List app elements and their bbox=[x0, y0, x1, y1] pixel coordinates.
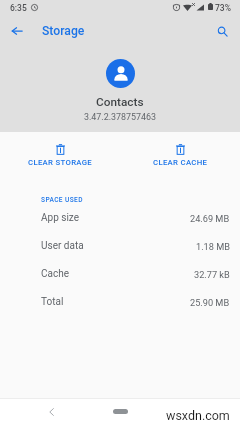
button[interactable]: CLEAR CACHE bbox=[120, 132, 240, 176]
staticText: Cache bbox=[41, 268, 69, 280]
button[interactable]: CLEAR STORAGE bbox=[0, 132, 120, 176]
staticText: 73% bbox=[215, 3, 231, 13]
button[interactable]: Home bbox=[113, 409, 128, 414]
button[interactable]: Total bbox=[0, 288, 240, 316]
button[interactable]: App size bbox=[0, 204, 240, 232]
staticText: Contacts bbox=[96, 95, 144, 109]
button[interactable]: Cache bbox=[0, 260, 240, 288]
button[interactable]: User data bbox=[0, 232, 240, 260]
staticText: 3.47.2.378757463 bbox=[84, 112, 156, 122]
staticText: 6:35 bbox=[10, 3, 27, 13]
staticText: Storage bbox=[42, 24, 85, 38]
staticText: 24.69 MB bbox=[190, 213, 230, 224]
staticText: 32.77 kB bbox=[194, 269, 230, 280]
staticText: 25.90 MB bbox=[190, 297, 230, 308]
button[interactable]: Search bbox=[211, 20, 233, 42]
staticText: App size bbox=[41, 212, 80, 224]
staticText: wsxdn.com bbox=[166, 408, 230, 423]
staticText: CLEAR STORAGE bbox=[28, 158, 93, 167]
staticText: CLEAR CACHE bbox=[153, 158, 208, 167]
staticText: 1.18 MB bbox=[196, 241, 230, 252]
button[interactable]: Back bbox=[6, 20, 28, 42]
staticText: SPACE USED bbox=[41, 196, 83, 204]
button[interactable]: Back bbox=[42, 403, 60, 421]
staticText: User data bbox=[41, 240, 84, 252]
staticText: Total bbox=[41, 296, 64, 308]
